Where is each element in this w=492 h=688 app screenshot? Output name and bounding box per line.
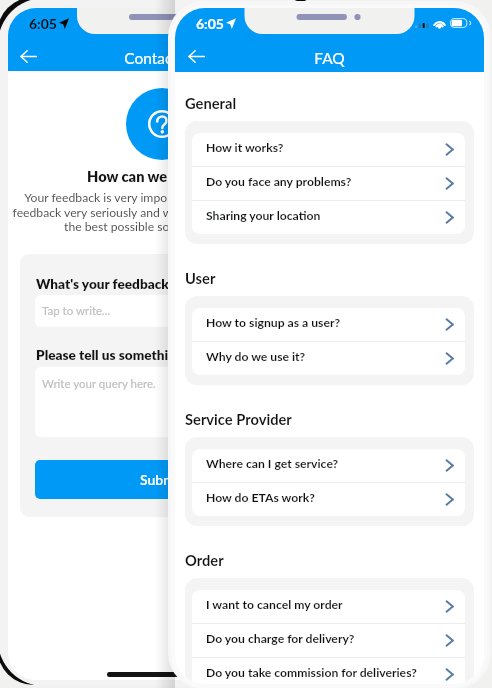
staticText: 6:05 bbox=[29, 15, 57, 32]
staticText: General bbox=[185, 94, 237, 112]
button[interactable]: Write your query here. bbox=[35, 367, 289, 437]
staticText: How can we help you? bbox=[8, 168, 314, 186]
button[interactable]: I want to cancel my order bbox=[192, 590, 465, 623]
staticText: FAQ bbox=[175, 49, 484, 68]
button[interactable]: Why do we use it? bbox=[192, 342, 465, 375]
staticText: How do ETAs work? bbox=[206, 490, 445, 505]
staticText: Order bbox=[185, 551, 224, 569]
staticText: Contact Us bbox=[8, 49, 316, 68]
staticText: Where can I get service? bbox=[206, 456, 445, 471]
staticText: Do you charge for delivery? bbox=[206, 631, 445, 646]
staticText: User bbox=[185, 269, 216, 287]
staticText: Tap to write... bbox=[42, 304, 111, 318]
staticText: Do you take commission for deliveries? bbox=[206, 665, 445, 680]
staticText: Submit bbox=[140, 471, 184, 488]
staticText: How to signup as a user? bbox=[206, 315, 445, 330]
staticText: How it works? bbox=[206, 140, 445, 155]
button[interactable]: Back bbox=[183, 43, 209, 69]
staticText: Do you face any problems? bbox=[206, 174, 445, 189]
staticText: What's your feedback about? bbox=[36, 276, 215, 292]
button[interactable]: Do you take commission for deliveries? bbox=[192, 658, 465, 684]
button[interactable]: How do ETAs work? bbox=[192, 483, 465, 516]
staticText: Why do we use it? bbox=[206, 349, 445, 364]
staticText: 6:05 bbox=[196, 15, 224, 32]
staticText: Write your query here. bbox=[42, 377, 156, 391]
staticText: Sharing your location bbox=[206, 208, 445, 223]
staticText: Service Provider bbox=[185, 410, 292, 428]
button[interactable]: How it works? bbox=[192, 133, 465, 166]
button[interactable]: Do you charge for delivery? bbox=[192, 624, 465, 657]
button[interactable]: Sharing your location bbox=[192, 201, 465, 234]
staticText: I want to cancel my order bbox=[206, 597, 445, 612]
button[interactable]: Submit bbox=[35, 460, 289, 499]
button[interactable]: Where can I get service? bbox=[192, 449, 465, 482]
button[interactable]: Do you face any problems? bbox=[192, 167, 465, 200]
staticText: Your feedback is very important to us. W… bbox=[8, 190, 316, 233]
staticText: Please tell us something about it. bbox=[36, 347, 238, 363]
button[interactable]: Back bbox=[15, 43, 41, 69]
button[interactable]: Tap to write... bbox=[35, 295, 289, 327]
button[interactable]: How to signup as a user? bbox=[192, 308, 465, 341]
